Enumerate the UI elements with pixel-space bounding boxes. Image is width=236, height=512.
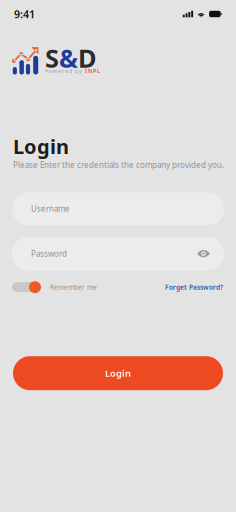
staticText: & (59, 41, 78, 75)
staticText: S (45, 41, 59, 75)
staticText: Username (31, 203, 70, 214)
staticText: Login (13, 133, 69, 160)
staticText: Login (105, 367, 131, 379)
staticText: Password (31, 248, 67, 259)
staticText: Forget Password? (165, 283, 223, 292)
button[interactable]: Username (12, 192, 224, 225)
staticText: Please Enter the credentials the company… (13, 160, 224, 170)
button[interactable]: Remember me (12, 281, 42, 294)
button[interactable]: Login (13, 356, 223, 390)
staticText: P o w e r e d b y (45, 67, 82, 75)
button[interactable]: Password (12, 237, 224, 270)
staticText: 9:41 (14, 7, 35, 21)
button[interactable]: Forget Password? (165, 283, 223, 292)
staticText: D (78, 41, 97, 75)
staticText: I N P L (85, 67, 100, 75)
staticText: Remember me (50, 283, 97, 292)
